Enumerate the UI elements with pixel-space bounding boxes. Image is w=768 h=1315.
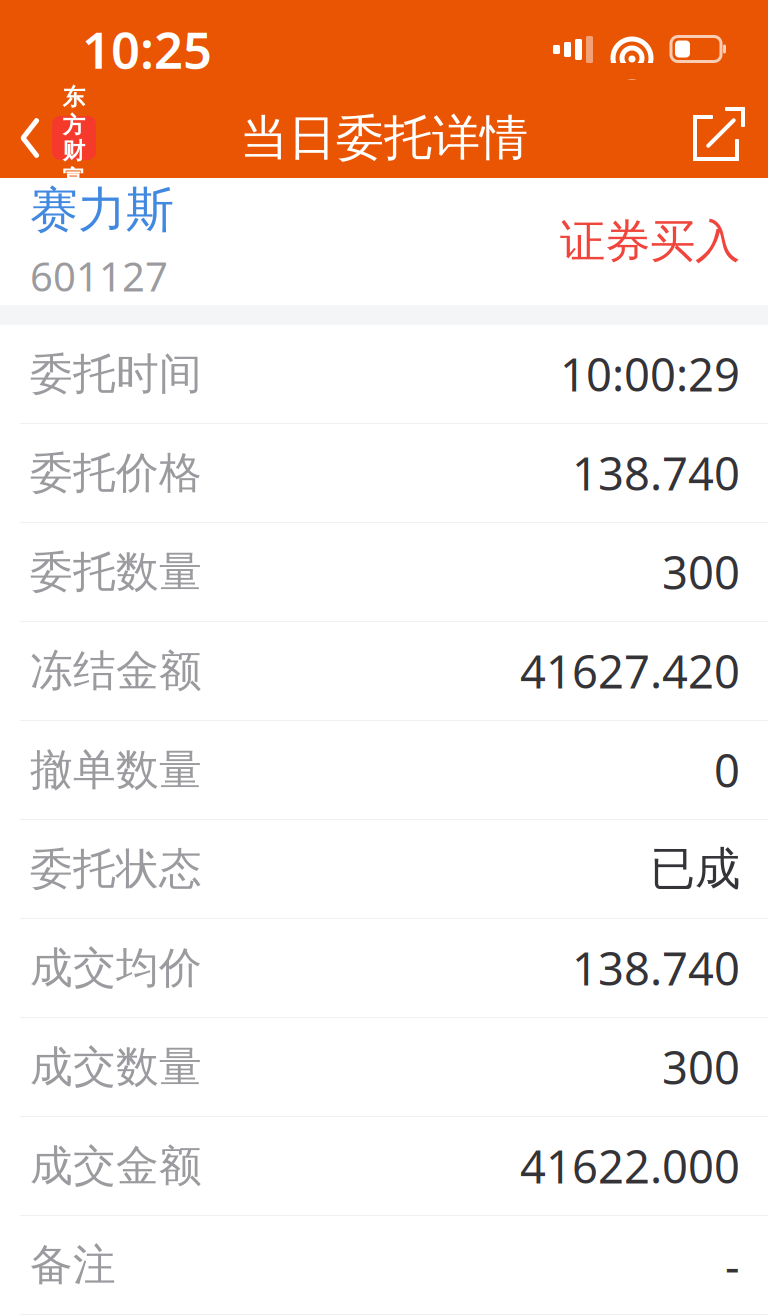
staticText: 委托价格 (30, 447, 202, 499)
staticText: 委托数量 (30, 546, 202, 598)
staticText: 300 (662, 1037, 740, 1097)
staticText: 委托时间 (30, 348, 202, 400)
staticText: 601127 (30, 249, 168, 302)
staticText: 300 (662, 542, 740, 602)
staticText: 138.740 (572, 443, 740, 503)
staticText: 10:25 (82, 15, 212, 83)
staticText: 冻结金额 (30, 645, 202, 697)
staticText: - (725, 1235, 740, 1295)
staticText: 成交数量 (30, 1041, 202, 1093)
staticText: 41622.000 (520, 1136, 740, 1196)
staticText: 东方 (62, 83, 85, 139)
staticText: 财富 (62, 137, 85, 193)
staticText: 备注 (30, 1239, 116, 1291)
button[interactable]: 返回 (0, 106, 96, 170)
staticText: 成交均价 (30, 942, 202, 994)
staticText: 证券买入 (560, 214, 740, 269)
staticText: 成交金额 (30, 1140, 202, 1192)
staticText: 0 (714, 740, 740, 800)
staticText: 撤单数量 (30, 744, 202, 796)
button[interactable]: 分享 (688, 100, 768, 176)
staticText: 41627.420 (520, 641, 740, 701)
staticText: 委托状态 (30, 843, 202, 895)
staticText: 138.740 (572, 938, 740, 998)
staticText: 已成 (650, 841, 740, 897)
staticText: 10:00:29 (560, 344, 740, 404)
staticText: 赛力斯 (30, 180, 174, 239)
staticText: 当日委托详情 (240, 108, 528, 167)
